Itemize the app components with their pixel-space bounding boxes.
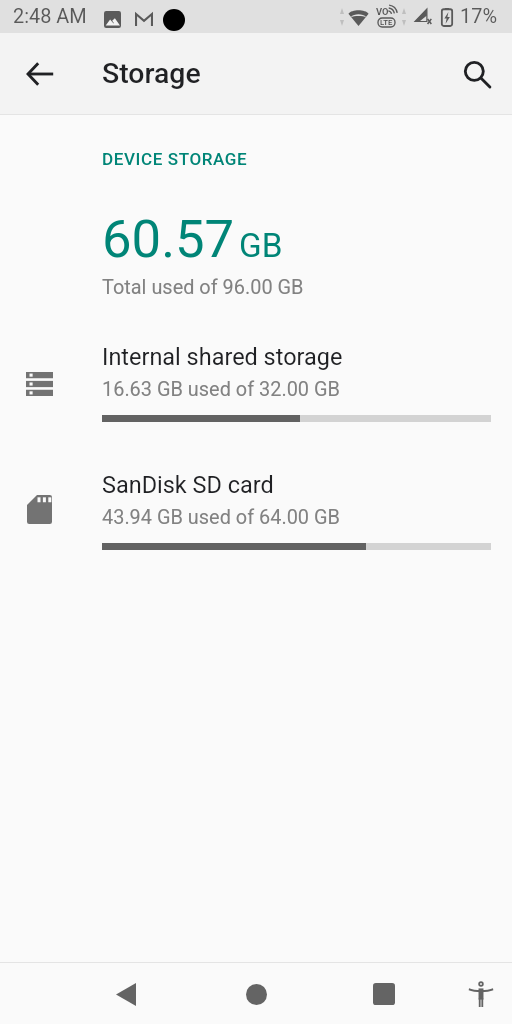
button[interactable]: Accessibility xyxy=(457,970,505,1018)
button[interactable]: Internal shared storage xyxy=(0,343,512,425)
staticText: VO xyxy=(376,6,389,17)
button[interactable]: SanDisk SD card xyxy=(0,471,512,550)
staticText: 60.57 xyxy=(102,208,235,270)
staticText: 17% xyxy=(460,5,497,28)
button[interactable]: Back xyxy=(102,970,150,1018)
staticText: 16.63 GB used of 32.00 GB xyxy=(102,378,340,401)
button[interactable]: Search xyxy=(443,40,511,108)
staticText: GB xyxy=(239,226,283,265)
staticText: SanDisk SD card xyxy=(102,471,274,499)
staticText: Total used of 96.00 GB xyxy=(102,276,304,299)
button[interactable]: Navigate up xyxy=(6,40,74,108)
staticText: Storage xyxy=(102,57,201,90)
staticText: DEVICE STORAGE xyxy=(102,149,248,169)
staticText: 43.94 GB used of 64.00 GB xyxy=(102,506,340,529)
staticText: LTE xyxy=(380,18,393,27)
button[interactable]: Home xyxy=(232,970,280,1018)
button[interactable]: Recent apps xyxy=(360,970,408,1018)
staticText: 2:48 AM xyxy=(13,5,87,28)
staticText: Internal shared storage xyxy=(102,343,343,371)
